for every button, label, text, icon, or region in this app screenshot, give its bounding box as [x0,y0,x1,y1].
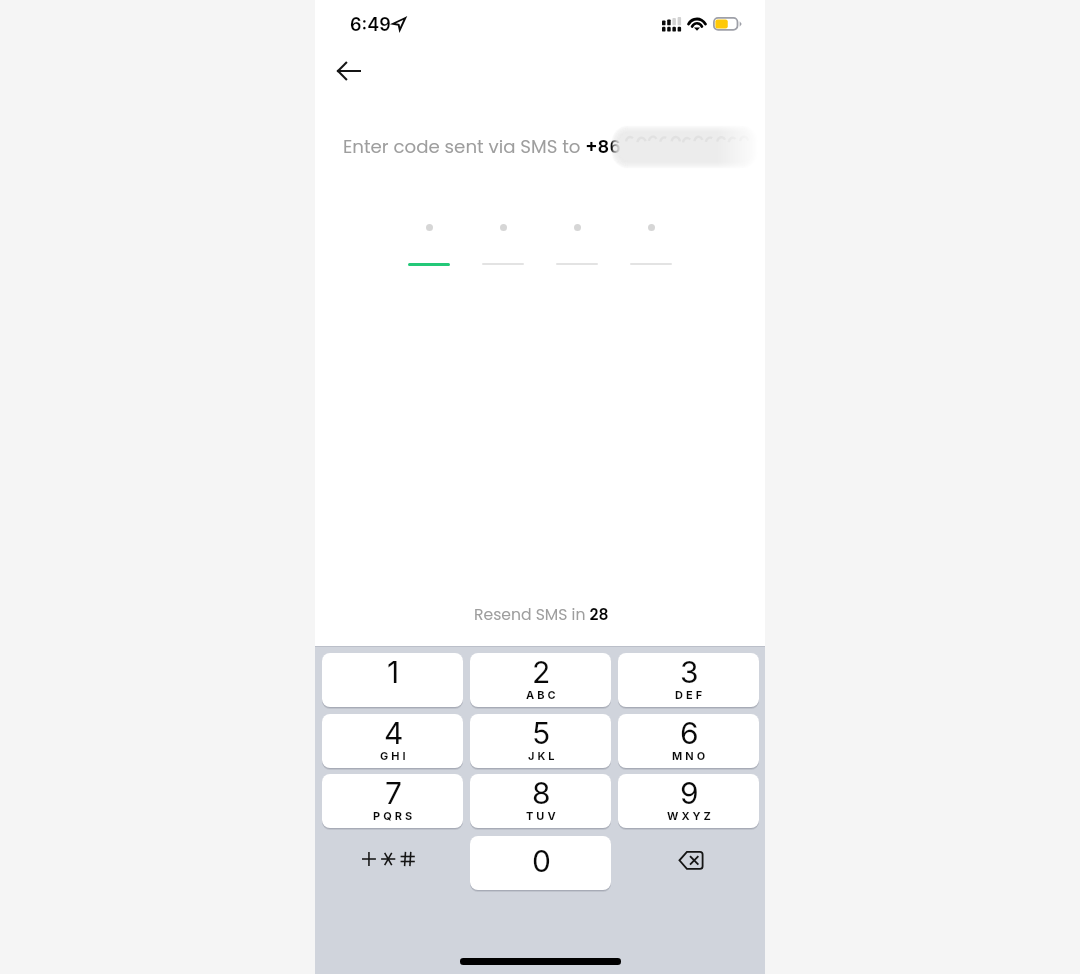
staticText: Resend SMS in 28 [474,604,609,626]
button[interactable]: 8 [470,774,611,828]
button[interactable]: 2 [470,653,611,707]
staticText: DEF [675,688,706,701]
staticText: 1 [387,654,400,690]
staticText: 6 [680,715,699,751]
staticText: 0 [532,843,551,879]
staticText: PQRS [373,809,416,822]
button[interactable]: 0 [470,836,611,890]
button[interactable]: Code digit 4 [630,212,672,274]
button[interactable]: Back [324,47,372,95]
button[interactable]: 4 [322,714,463,768]
staticText: 5 [532,715,551,751]
staticText: 8 [532,775,551,811]
button[interactable]: Code digit 3 [556,212,598,274]
button[interactable]: Code digit 2 [482,212,524,274]
button[interactable]: 3 [618,653,759,707]
staticText: WXYZ [667,809,714,822]
button[interactable]: 6 [618,714,759,768]
button[interactable]: Symbols [322,836,463,890]
button[interactable]: Code digit 1 [408,212,450,274]
button[interactable]: 1 [322,653,463,707]
staticText: JKL [528,749,558,762]
staticText: MNO [672,749,709,762]
staticText: TUV [526,809,559,822]
staticText: 6:49 [350,14,391,36]
staticText: 2 [532,654,551,690]
button[interactable]: Delete [618,836,759,890]
staticText: ABC [526,688,559,701]
staticText: 4 [384,715,404,751]
staticText: Enter code sent via SMS to +86 [343,134,621,159]
staticText: 7 [385,775,402,811]
staticText: 3 [680,654,699,690]
staticText: 9 [680,775,699,811]
button[interactable]: 5 [470,714,611,768]
staticText: GHI [380,749,409,762]
button[interactable]: 9 [618,774,759,828]
button[interactable]: 7 [322,774,463,828]
